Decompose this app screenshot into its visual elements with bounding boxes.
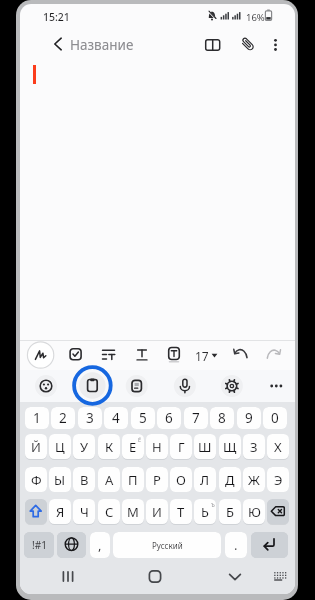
button[interactable] bbox=[251, 532, 288, 558]
button[interactable]: Р bbox=[146, 467, 168, 492]
button[interactable] bbox=[34, 374, 58, 398]
button[interactable]: 7 bbox=[184, 407, 208, 429]
staticText: К bbox=[105, 438, 114, 456]
button[interactable]: Ы bbox=[49, 467, 71, 492]
staticText: С bbox=[105, 503, 114, 521]
staticText: Ю bbox=[248, 503, 261, 521]
button[interactable]: М bbox=[122, 499, 144, 524]
button[interactable]: У bbox=[73, 434, 95, 459]
button[interactable] bbox=[25, 499, 47, 524]
button[interactable] bbox=[220, 374, 244, 398]
button[interactable]: 4 bbox=[104, 407, 128, 429]
button[interactable]: 8 bbox=[210, 407, 234, 429]
button[interactable] bbox=[160, 341, 187, 369]
staticText: Русский bbox=[152, 540, 183, 551]
button[interactable]: Ж bbox=[243, 467, 265, 492]
button[interactable]: 1 bbox=[25, 407, 49, 429]
staticText: Л bbox=[200, 471, 210, 489]
staticText: А bbox=[105, 471, 114, 489]
button[interactable]: Э bbox=[267, 467, 289, 492]
button[interactable]: Ц bbox=[49, 434, 71, 459]
button[interactable]: . bbox=[225, 532, 247, 558]
button[interactable] bbox=[62, 341, 89, 369]
button[interactable]: Ч bbox=[73, 499, 95, 524]
staticText: 6 bbox=[165, 409, 173, 427]
button[interactable] bbox=[201, 33, 225, 57]
button[interactable]: Я bbox=[49, 499, 71, 524]
staticText: М bbox=[127, 503, 139, 521]
button[interactable]: Л bbox=[194, 467, 216, 492]
staticText: Б bbox=[226, 503, 234, 521]
staticText: Щ bbox=[223, 438, 237, 456]
button[interactable]: 0 bbox=[263, 407, 287, 429]
button[interactable]: Й bbox=[25, 434, 47, 459]
button[interactable] bbox=[219, 564, 251, 590]
button[interactable]: Ю bbox=[243, 499, 265, 524]
button[interactable] bbox=[259, 341, 286, 369]
button[interactable]: 9 bbox=[237, 407, 261, 429]
button[interactable]: Н bbox=[146, 434, 168, 459]
button[interactable]: Ш bbox=[194, 434, 216, 459]
staticText: Ц bbox=[55, 438, 65, 456]
button[interactable]: И bbox=[146, 499, 168, 524]
button[interactable] bbox=[227, 341, 254, 369]
button[interactable]: !#1 bbox=[24, 532, 54, 558]
button[interactable]: Русский bbox=[113, 532, 221, 558]
staticText: П bbox=[128, 471, 138, 489]
button[interactable]: А bbox=[98, 467, 120, 492]
button[interactable] bbox=[236, 33, 260, 57]
button[interactable]: Е bbox=[122, 434, 144, 459]
button[interactable]: Б bbox=[219, 499, 241, 524]
button[interactable] bbox=[192, 341, 222, 369]
button[interactable]: Х bbox=[267, 434, 289, 459]
staticText: Название bbox=[70, 36, 134, 54]
staticText: Д bbox=[225, 471, 235, 489]
staticText: О bbox=[176, 471, 186, 489]
staticText: Я bbox=[56, 503, 65, 521]
staticText: З bbox=[250, 438, 258, 456]
button[interactable]: Щ bbox=[219, 434, 241, 459]
staticText: 5 bbox=[139, 409, 147, 427]
button[interactable] bbox=[46, 32, 70, 56]
staticText: Ё bbox=[138, 436, 142, 443]
staticText: Х bbox=[274, 438, 282, 456]
button[interactable]: 3 bbox=[78, 407, 102, 429]
staticText: Р bbox=[153, 471, 161, 489]
button[interactable]: О bbox=[170, 467, 192, 492]
button[interactable]: В bbox=[73, 467, 95, 492]
button[interactable] bbox=[124, 374, 148, 398]
button[interactable]: 6 bbox=[157, 407, 181, 429]
button[interactable]: К bbox=[98, 434, 120, 459]
button[interactable]: , bbox=[90, 532, 110, 558]
button[interactable] bbox=[128, 341, 155, 369]
staticText: У bbox=[80, 438, 89, 456]
button[interactable]: Г bbox=[170, 434, 192, 459]
button[interactable]: Т bbox=[170, 499, 192, 524]
button[interactable] bbox=[264, 33, 288, 57]
staticText: 9 bbox=[245, 409, 253, 427]
staticText: 3 bbox=[86, 409, 94, 427]
button[interactable] bbox=[172, 374, 196, 398]
button[interactable] bbox=[27, 341, 54, 369]
button[interactable] bbox=[264, 374, 288, 398]
staticText: . bbox=[234, 536, 238, 554]
button[interactable]: С bbox=[98, 499, 120, 524]
button[interactable] bbox=[266, 564, 294, 590]
button[interactable] bbox=[78, 374, 102, 398]
staticText: 8 bbox=[218, 409, 226, 427]
button[interactable] bbox=[267, 499, 289, 524]
button[interactable] bbox=[52, 564, 84, 590]
button[interactable]: З bbox=[243, 434, 265, 459]
button[interactable]: 5 bbox=[131, 407, 155, 429]
button[interactable]: Ь bbox=[194, 499, 216, 524]
button[interactable] bbox=[139, 564, 171, 590]
button[interactable]: Д bbox=[219, 467, 241, 492]
button[interactable]: П bbox=[122, 467, 144, 492]
button[interactable]: Ф bbox=[25, 467, 47, 492]
staticText: Ж bbox=[248, 471, 260, 489]
staticText: Ф bbox=[31, 471, 42, 489]
button[interactable] bbox=[95, 341, 122, 369]
button[interactable] bbox=[57, 532, 86, 558]
button[interactable]: 2 bbox=[51, 407, 75, 429]
staticText: Ь bbox=[201, 503, 209, 521]
